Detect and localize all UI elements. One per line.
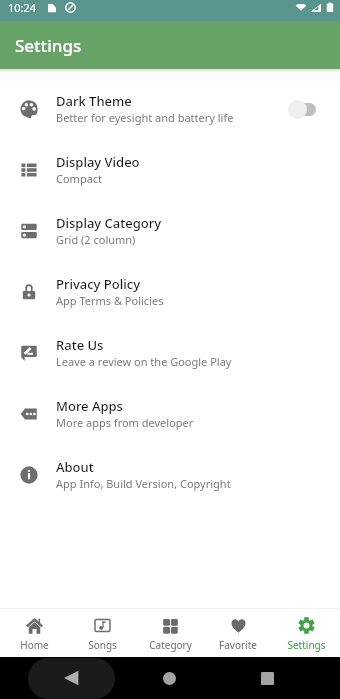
button[interactable]: Rate Us <box>0 323 340 384</box>
button[interactable]: Display Video <box>0 140 340 201</box>
staticText: About <box>56 458 94 476</box>
staticText: Favorite <box>219 638 257 652</box>
staticText: Songs <box>88 638 117 652</box>
staticText: Privacy Policy <box>56 275 140 293</box>
button[interactable]: Dark Theme <box>0 79 340 140</box>
button[interactable]: Settings <box>272 609 340 657</box>
staticText: Category <box>149 638 192 652</box>
staticText: App Info, Build Version, Copyright <box>56 476 231 491</box>
staticText: Compact <box>56 171 103 186</box>
staticText: Dark Theme <box>56 92 132 110</box>
staticText: Settings <box>287 638 326 652</box>
button[interactable]: Privacy Policy <box>0 262 340 323</box>
button[interactable]: Home <box>163 672 176 685</box>
staticText: Home <box>20 638 49 652</box>
staticText: More Apps <box>56 397 123 415</box>
button[interactable]: More Apps <box>0 384 340 445</box>
button[interactable]: Recents <box>261 672 274 685</box>
button[interactable]: Home <box>0 609 68 657</box>
staticText: App Terms & Policies <box>56 293 164 308</box>
button[interactable]: Back <box>28 658 115 699</box>
button[interactable]: Favorite <box>204 609 272 657</box>
staticText: Display Category <box>56 214 162 232</box>
button[interactable]: Display Category <box>0 201 340 262</box>
staticText: Settings <box>15 34 82 57</box>
staticText: 10:24 <box>8 0 37 15</box>
staticText: Better for eyesight and battery life <box>56 110 234 125</box>
staticText: Grid (2 column) <box>56 232 136 247</box>
button[interactable]: Songs <box>68 609 136 657</box>
button[interactable]: Category <box>136 609 204 657</box>
staticText: Leave a review on the Google Play <box>56 354 232 369</box>
staticText: Rate Us <box>56 336 104 354</box>
staticText: Display Video <box>56 153 140 171</box>
button[interactable]: About <box>0 445 340 506</box>
staticText: More apps from developer <box>56 415 194 430</box>
